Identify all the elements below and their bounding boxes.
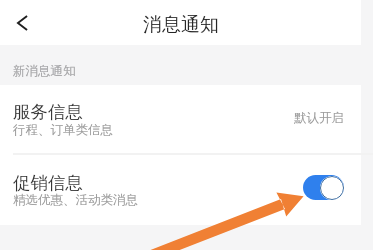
- staticText: 促销信息: [13, 172, 83, 194]
- button[interactable]: 促销信息: [0, 154, 361, 225]
- button[interactable]: 促销信息开关: [303, 175, 344, 200]
- staticText: 精选优惠、活动类消息: [13, 192, 138, 208]
- staticText: 行程、订单类信息: [13, 122, 113, 138]
- staticText: 新消息通知: [13, 63, 76, 79]
- button[interactable]: 服务信息: [0, 85, 361, 153]
- staticText: 服务信息: [13, 101, 83, 123]
- button[interactable]: 返回: [0, 1, 44, 45]
- staticText: 消息通知: [143, 13, 219, 37]
- staticText: 默认开启: [294, 110, 344, 126]
